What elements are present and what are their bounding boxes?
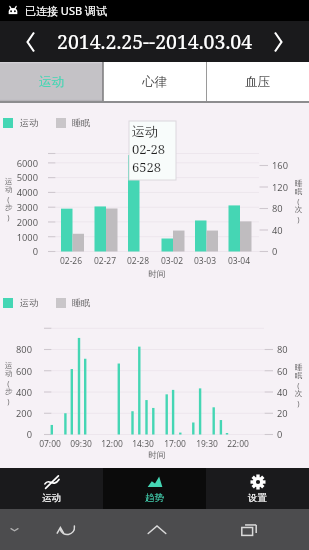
staticText: 1000 <box>0 231 38 244</box>
staticText: 5000 <box>0 171 38 184</box>
button[interactable]: 血压 <box>206 62 309 101</box>
staticText: 400 <box>0 386 32 399</box>
staticText: 60 <box>277 365 288 378</box>
staticText: 心律 <box>142 74 167 90</box>
button[interactable]: 趋势 <box>103 468 206 509</box>
staticText: 200 <box>0 407 32 420</box>
staticText: 40 <box>272 224 283 237</box>
staticText: 运动 <box>20 117 38 128</box>
staticText: 03-04 <box>223 255 255 267</box>
staticText: 运 动 ( 步 ) <box>4 177 13 222</box>
staticText: 14:30 <box>127 438 159 450</box>
staticText: 运 动 ( 步 ) <box>4 361 13 406</box>
button[interactable]: 设置 <box>206 468 309 509</box>
staticText: 120 <box>272 181 288 194</box>
staticText: 0 <box>277 428 283 441</box>
staticText: 运动 <box>42 492 61 504</box>
staticText: 睡 眠 ( 次 ) <box>294 179 303 224</box>
staticText: 03-03 <box>189 255 221 267</box>
staticText: 07:00 <box>34 438 66 450</box>
staticText: 睡 眠 ( 次 ) <box>294 363 303 408</box>
staticText: 4000 <box>0 186 38 199</box>
staticText: 血压 <box>245 74 270 90</box>
staticText: 运动 <box>39 74 64 90</box>
staticText: 0 <box>0 245 38 258</box>
staticText: 03-02 <box>156 255 188 267</box>
button[interactable]: Home <box>111 509 203 550</box>
staticText: 09:30 <box>65 438 97 450</box>
staticText: 睡眠 <box>72 297 90 308</box>
staticText: 2014.2.25--2014.03.04 <box>57 28 253 55</box>
staticText: 6000 <box>0 157 38 170</box>
staticText: 02-27 <box>89 255 121 267</box>
button[interactable]: Next week <box>263 21 293 62</box>
staticText: 0 <box>0 428 32 441</box>
button[interactable]: Back <box>20 509 111 550</box>
staticText: 设置 <box>248 492 267 504</box>
staticText: 17:00 <box>159 438 191 450</box>
staticText: 时间 <box>141 269 173 280</box>
staticText: 睡眠 <box>72 117 90 128</box>
staticText: 12:00 <box>96 438 128 450</box>
staticText: 800 <box>0 343 32 356</box>
staticText: 02-28 <box>122 255 154 267</box>
button[interactable]: 运动 <box>0 62 103 101</box>
staticText: 160 <box>272 159 288 172</box>
staticText: 80 <box>277 343 288 356</box>
button[interactable]: Recent apps <box>203 509 295 550</box>
button[interactable]: 运动 <box>0 468 103 509</box>
staticText: 80 <box>272 202 283 215</box>
staticText: 600 <box>0 365 32 378</box>
staticText: 0 <box>272 245 278 258</box>
staticText: 已连接 USB 调试 <box>25 3 107 18</box>
staticText: 22:00 <box>222 438 254 450</box>
staticText: 2000 <box>0 216 38 229</box>
staticText: 40 <box>277 386 288 399</box>
staticText: 运动 <box>20 297 38 308</box>
button[interactable]: 心律 <box>103 62 206 101</box>
staticText: 时间 <box>141 450 173 461</box>
button[interactable]: Previous week <box>16 21 46 62</box>
staticText: 20 <box>277 407 288 420</box>
staticText: 19:30 <box>191 438 223 450</box>
staticText: 趋势 <box>145 492 164 504</box>
staticText: 运动 02-28 6528 <box>132 123 166 176</box>
staticText: 3000 <box>0 201 38 214</box>
staticText: 02-26 <box>55 255 87 267</box>
